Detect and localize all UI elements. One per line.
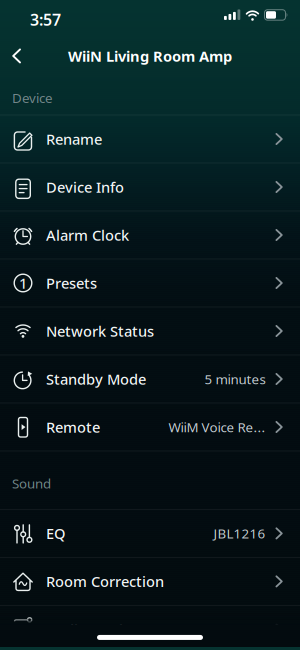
staticText: 1 [19, 273, 27, 293]
button[interactable]: Device Info [0, 163, 300, 211]
staticText: JBL1216 [213, 525, 265, 542]
button[interactable]: 1 [0, 259, 300, 307]
staticText: 3:57 [30, 9, 61, 30]
staticText: Device Info [46, 177, 124, 197]
button[interactable]: EQ [0, 510, 300, 557]
staticText: Audio Settings [46, 620, 148, 639]
staticText: Rename [46, 129, 102, 149]
button[interactable]: Room Correction [0, 558, 300, 605]
staticText: Sound [12, 474, 51, 492]
staticText: 5 minutes [204, 370, 265, 388]
button[interactable]: Rename [0, 115, 300, 163]
button[interactable] [0, 40, 22, 71]
button[interactable]: Audio Settings [0, 606, 300, 650]
staticText: Network Status [46, 321, 154, 341]
button[interactable]: Alarm Clock [0, 211, 300, 259]
staticText: Device [12, 89, 53, 107]
staticText: Standby Mode [46, 369, 146, 389]
button[interactable]: Standby Mode [0, 355, 300, 403]
staticText: Room Correction [46, 572, 164, 591]
staticText: EQ [46, 524, 65, 543]
staticText: WiiM Voice Re... [168, 418, 265, 436]
staticText: Presets [46, 273, 97, 293]
button[interactable]: Network Status [0, 307, 300, 355]
staticText: Remote [46, 417, 100, 437]
staticText: Alarm Clock [46, 225, 129, 245]
staticText: WiiN Living Room Amp [68, 46, 232, 66]
button[interactable]: Remote [0, 403, 300, 451]
